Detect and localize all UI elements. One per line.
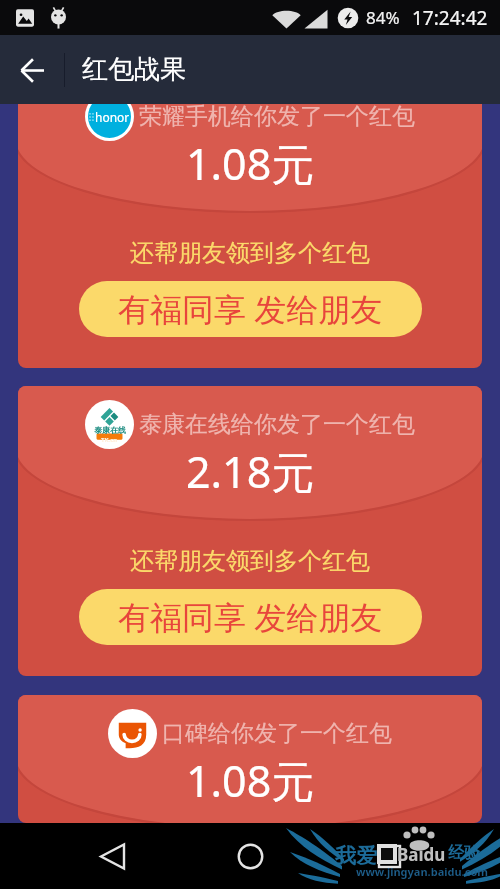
- staticText: 口碑给你发了一个红包: [162, 719, 392, 748]
- staticText: 泰康在线给你发了一个红包: [139, 410, 415, 439]
- staticText: TK.cn: [101, 436, 118, 444]
- button[interactable]: honor: [18, 104, 482, 368]
- staticText: www.jingyan.baidu.com: [356, 864, 488, 879]
- staticText: 1.08元: [186, 751, 315, 810]
- staticText: 我爱: [335, 843, 377, 869]
- staticText: 84%: [366, 6, 400, 29]
- staticText: 17:24:42: [412, 5, 488, 31]
- staticText: 有福同享 发给朋友: [118, 595, 383, 639]
- button[interactable]: Back: [0, 38, 64, 102]
- button[interactable]: 有福同享 发给朋友: [79, 281, 422, 337]
- staticText: 1.08元: [186, 134, 315, 193]
- staticText: 荣耀手机给你发了一个红包: [139, 104, 415, 131]
- staticText: Baidu: [397, 843, 446, 866]
- staticText: 红包战果: [82, 53, 186, 86]
- staticText: honor: [95, 109, 130, 125]
- button[interactable]: 口碑给你发了一个红包: [18, 695, 482, 823]
- staticText: 有福同享 发给朋友: [118, 287, 383, 331]
- staticText: 还帮朋友领到多个红包: [130, 238, 370, 268]
- button[interactable]: Recents: [362, 829, 416, 883]
- staticText: 经验: [448, 843, 480, 863]
- button[interactable]: Back: [85, 829, 139, 883]
- staticText: 2.18元: [186, 442, 315, 501]
- button[interactable]: 泰康在线: [18, 386, 482, 676]
- button[interactable]: 有福同享 发给朋友: [79, 589, 422, 645]
- staticText: 还帮朋友领到多个红包: [130, 546, 370, 576]
- button[interactable]: Home: [223, 829, 277, 883]
- staticText: 泰康在线: [94, 425, 126, 435]
